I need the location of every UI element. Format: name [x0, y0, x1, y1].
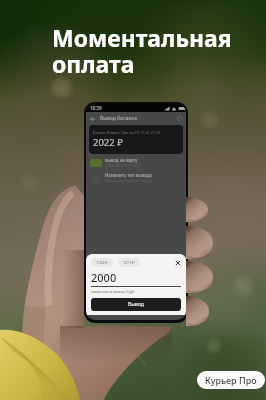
button[interactable]: Назад: [86, 112, 186, 125]
staticText: 1217 ₽: [123, 260, 135, 265]
staticText: Вывод: [128, 301, 144, 308]
staticText: 2000: [91, 270, 117, 285]
button[interactable]: Вывод: [91, 298, 181, 311]
button[interactable]: вывод на карту: [86, 155, 186, 170]
button[interactable]: 1162 ₽: [91, 258, 113, 267]
staticText: Вывод баланса: [100, 115, 137, 122]
staticText: Моментальная оплата: [52, 22, 232, 80]
staticText: 1162 ₽: [96, 260, 108, 265]
button[interactable]: Баланс Яндекс Про на 13.11.21 21:16: [89, 125, 183, 154]
button[interactable]: Закрыть: [175, 260, 181, 266]
staticText: Курьер Про: [205, 374, 257, 386]
button[interactable]: Изменить тип вывода: [86, 170, 186, 185]
staticText: 2202 2002 4011 2211: [105, 163, 141, 168]
other: Помощь: [177, 116, 182, 121]
staticText: выплата в течение 3 минут: [105, 178, 153, 183]
staticText: 2022 ₽: [93, 136, 123, 149]
staticText: Баланс Яндекс Про на 13.11.21 21:16: [93, 130, 161, 135]
other: Назад: [90, 116, 96, 122]
staticText: 18:39: [90, 105, 102, 111]
staticText: Изменить тип вывода: [105, 172, 152, 178]
button[interactable]: 1217 ₽: [118, 258, 140, 267]
button[interactable]: Курьер Про: [197, 371, 265, 389]
staticText: комиссия за вывод 0 руб.: [91, 289, 136, 294]
staticText: вывод на карту: [105, 157, 138, 163]
